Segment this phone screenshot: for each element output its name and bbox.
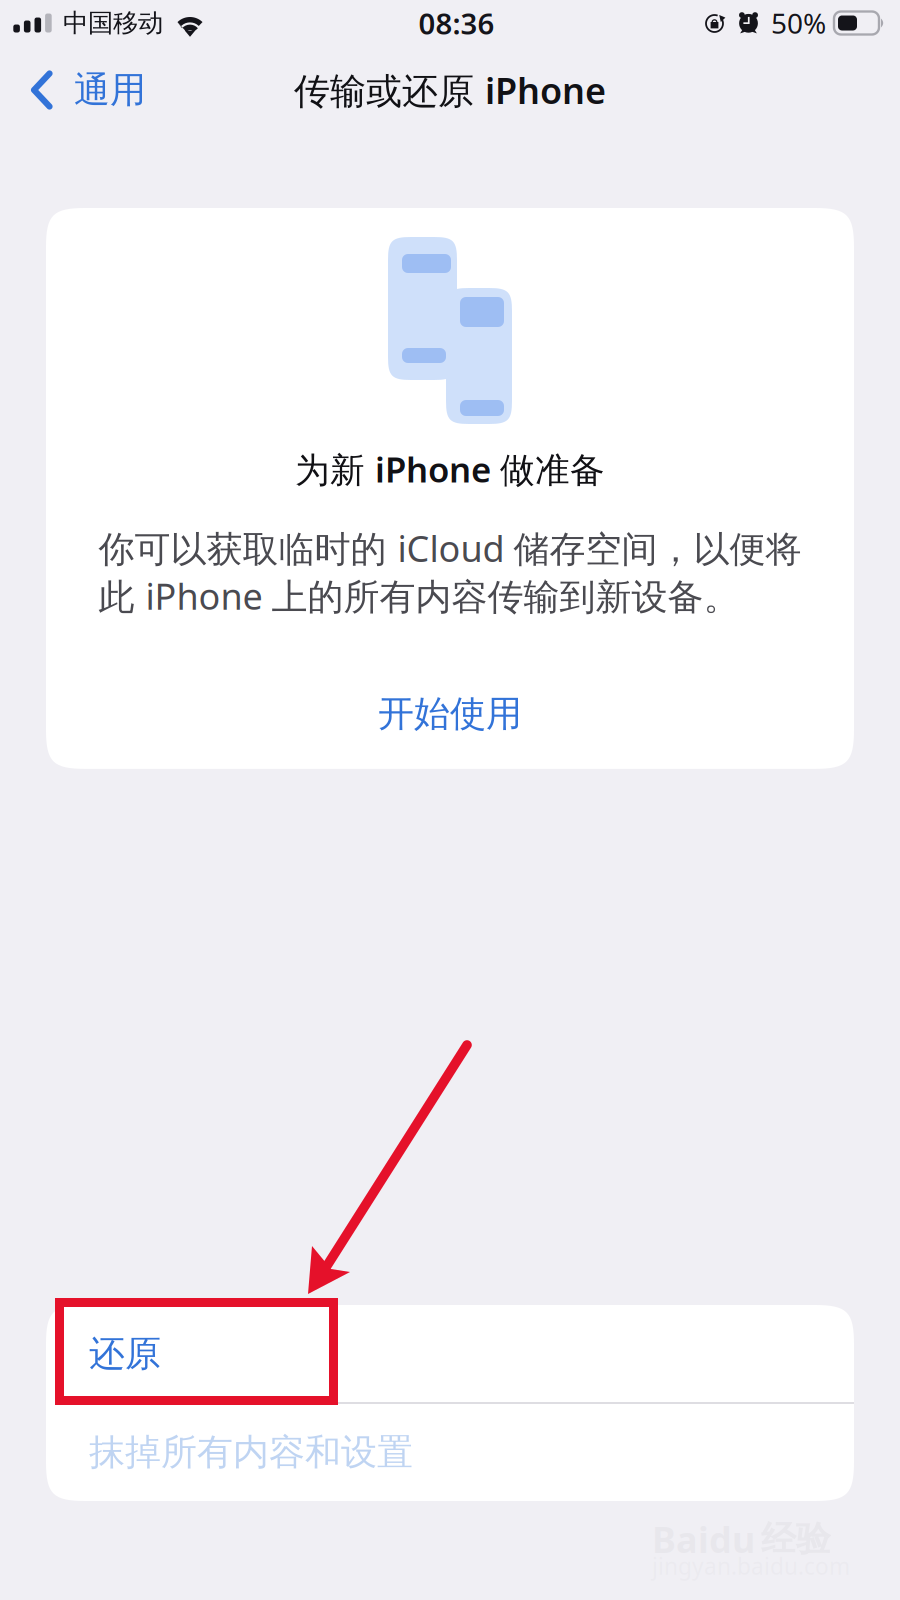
button[interactable]: 开始使用 [250,620,650,769]
staticText: 还原 [89,1332,161,1376]
staticText: 为新 iPhone 做准备 [295,446,605,492]
staticText: 抹掉所有内容和设置 [89,1430,413,1474]
staticText: 通用 [74,68,146,112]
staticText: 中国移动 [63,7,163,38]
button[interactable]: 通用 [0,52,164,128]
staticText: 传输或还原 iPhone [294,66,606,114]
button[interactable]: 抹掉所有内容和设置 [46,1404,854,1501]
staticText: 50% [771,4,826,42]
staticText: 你可以获取临时的 iCloud 储存空间，以便将此 iPhone 上的所有内容传… [98,524,801,620]
button[interactable]: 还原 [46,1305,854,1402]
staticText: 经验 [761,1518,831,1560]
staticText: 开始使用 [378,692,522,736]
staticText: 08:36 [418,3,494,42]
staticText: Baidu [652,1515,755,1563]
